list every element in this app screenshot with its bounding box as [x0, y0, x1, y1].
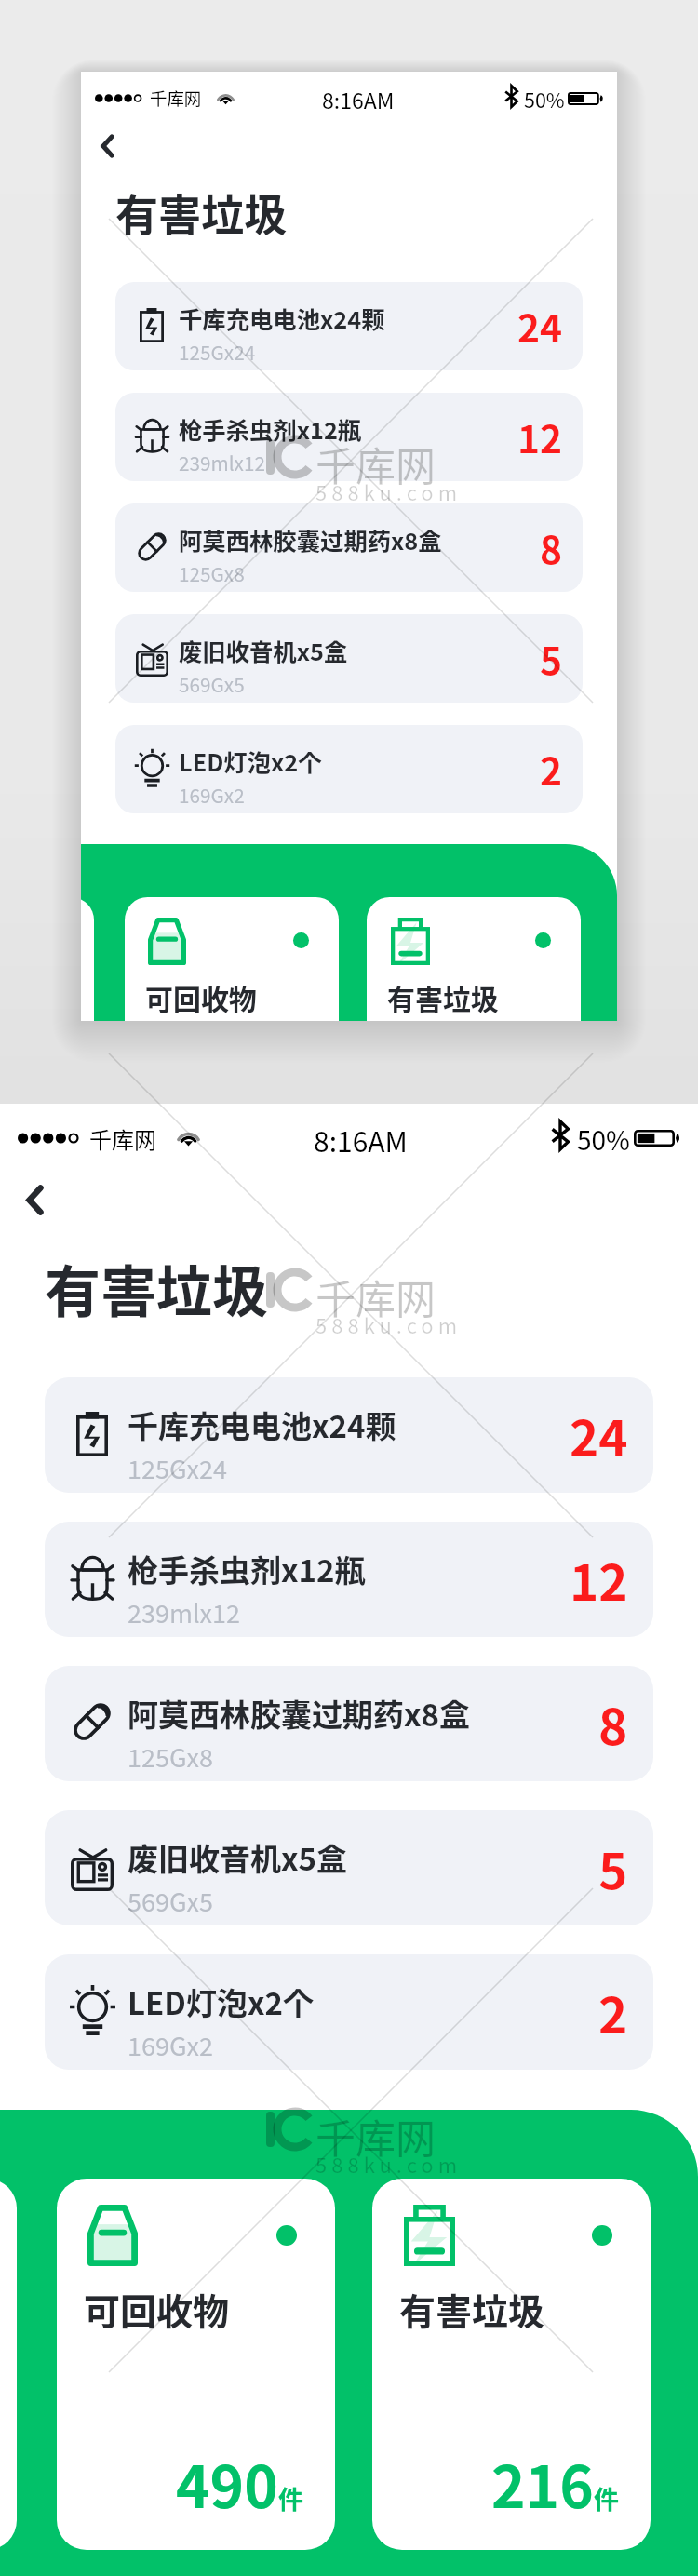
staticText: 569Gx5	[179, 670, 245, 698]
button[interactable]: 阿莫西林胶囊过期药x8盒	[45, 1666, 653, 1781]
staticText: 有害垃圾	[399, 2283, 545, 2335]
staticText: 2	[540, 742, 563, 797]
staticText: LED灯泡x2个	[128, 1979, 314, 2024]
staticText: 239mlx12	[179, 449, 265, 476]
button[interactable]: 废旧收音机x5盒	[115, 614, 583, 703]
staticText: 千库网	[315, 2107, 436, 2165]
staticText: 千库充电电池x24颗	[179, 302, 385, 336]
staticText: 50%	[524, 85, 565, 114]
staticText: 枪手杀虫剂x12瓶	[128, 1547, 366, 1591]
staticText: 8:16AM	[322, 84, 395, 114]
staticText: 5	[598, 1832, 628, 1904]
staticText: 125Gx8	[179, 559, 245, 587]
button[interactable]	[81, 897, 94, 1021]
button[interactable]: Back	[87, 125, 128, 167]
staticText: 569Gx5	[128, 1883, 213, 1919]
button[interactable]: LED灯泡x2个	[115, 725, 583, 813]
staticText: 2	[598, 1977, 628, 2048]
staticText: 12	[517, 409, 563, 464]
staticText: 125Gx24	[128, 1450, 227, 1486]
button[interactable]: 阿莫西林胶囊过期药x8盒	[115, 503, 583, 592]
staticText: 阿莫西林胶囊过期药x8盒	[179, 523, 442, 557]
staticText: 12	[570, 1544, 628, 1616]
button[interactable]: Back	[7, 1173, 61, 1227]
button[interactable]: LED灯泡x2个	[45, 1954, 653, 2070]
button[interactable]: 千库充电电池x24颗	[115, 282, 583, 370]
staticText: 169Gx2	[128, 2027, 213, 2063]
button[interactable]: 枪手杀虫剂x12瓶	[115, 393, 583, 481]
staticText: 490	[176, 2441, 278, 2525]
staticText: 有害垃圾	[115, 181, 288, 244]
staticText: 24	[517, 299, 563, 354]
staticText: 有害垃圾	[45, 1247, 268, 1328]
staticText: 千库网	[150, 86, 202, 111]
button[interactable]: 有害垃圾	[372, 2179, 651, 2550]
staticText: 可回收物	[145, 977, 257, 1017]
staticText: 件	[278, 2480, 303, 2516]
staticText: 8	[598, 1688, 628, 1760]
button[interactable]: 废旧收音机x5盒	[45, 1810, 653, 1925]
staticText: 枪手杀虫剂x12瓶	[179, 412, 362, 447]
staticText: 8:16AM	[314, 1120, 408, 1160]
staticText: 125Gx8	[128, 1738, 213, 1775]
staticText: 588ku.com	[315, 476, 463, 506]
staticText: 废旧收音机x5盒	[128, 1835, 348, 1880]
staticText: 阿莫西林胶囊过期药x8盒	[128, 1691, 471, 1736]
staticText: 125Gx24	[179, 338, 256, 366]
button[interactable]: 可回收物	[125, 897, 339, 1021]
staticText: 千库网	[89, 1122, 156, 1155]
staticText: 千库网	[315, 435, 436, 492]
staticText: 588ku.com	[315, 2149, 463, 2179]
staticText: 废旧收音机x5盒	[179, 634, 348, 668]
staticText: 可回收物	[84, 2283, 230, 2335]
button[interactable]: 千库充电电池x24颗	[45, 1377, 653, 1493]
staticText: 169Gx2	[179, 781, 245, 809]
staticText: 50%	[577, 1120, 630, 1159]
staticText: 239mlx12	[128, 1594, 241, 1630]
button[interactable]: 可回收物	[57, 2179, 335, 2550]
button[interactable]: 有害垃圾	[367, 897, 581, 1021]
staticText: 千库充电电池x24颗	[128, 1402, 396, 1447]
staticText: 5	[540, 631, 563, 686]
button[interactable]: 枪手杀虫剂x12瓶	[45, 1522, 653, 1637]
staticText: 件	[594, 2480, 619, 2516]
button[interactable]	[0, 2179, 17, 2550]
staticText: 588ku.com	[315, 1309, 463, 1339]
staticText: 24	[570, 1400, 628, 1471]
staticText: 8	[540, 520, 563, 575]
staticText: 千库网	[315, 1268, 436, 1325]
staticText: 有害垃圾	[387, 977, 499, 1017]
staticText: LED灯泡x2个	[179, 745, 322, 779]
staticText: 216	[491, 2441, 594, 2525]
